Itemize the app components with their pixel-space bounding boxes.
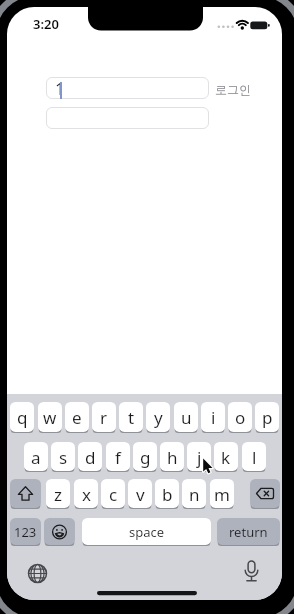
button[interactable]: q [10, 402, 34, 433]
staticText: n [189, 483, 200, 506]
staticText: l [252, 446, 257, 469]
staticText: q [17, 406, 28, 429]
button[interactable]: i [201, 402, 225, 433]
staticText: h [167, 446, 178, 469]
staticText: 3:20 [33, 15, 59, 33]
button[interactable]: space [82, 518, 211, 546]
button[interactable]: v [128, 479, 152, 509]
button[interactable]: 로그인 [215, 82, 251, 97]
staticText: o [235, 406, 246, 429]
staticText: w [43, 406, 57, 429]
button[interactable]: l [242, 442, 266, 472]
button[interactable]: f [106, 442, 130, 472]
button[interactable]: o [228, 402, 252, 433]
button[interactable]: m [210, 479, 234, 509]
staticText: 1 [55, 77, 65, 99]
staticText: return [229, 523, 268, 541]
button[interactable]: t [119, 402, 143, 433]
staticText: v [136, 483, 145, 506]
button[interactable] [23, 559, 52, 588]
button[interactable]: return [217, 518, 280, 546]
button[interactable]: e [65, 402, 89, 433]
staticText: e [72, 406, 82, 429]
button[interactable]: s [51, 442, 75, 472]
button[interactable] [237, 557, 266, 586]
staticText: z [54, 483, 62, 506]
staticText: a [31, 446, 41, 469]
staticText: p [262, 406, 273, 429]
staticText: r [100, 406, 108, 429]
staticText: s [59, 446, 68, 469]
button[interactable]: p [255, 402, 279, 433]
button[interactable]: z [46, 479, 70, 509]
staticText: 123 [14, 523, 37, 541]
button[interactable]: b [155, 479, 179, 509]
staticText: space [129, 523, 165, 541]
staticText: b [162, 483, 173, 506]
button[interactable]: y [146, 402, 170, 433]
button[interactable]: h [160, 442, 184, 472]
button[interactable]: a [24, 442, 48, 472]
staticText: f [115, 446, 121, 469]
staticText: c [109, 483, 118, 506]
staticText: j [197, 446, 202, 469]
button[interactable]: d [78, 442, 102, 472]
staticText: x [82, 483, 91, 506]
button[interactable]: r [92, 402, 116, 433]
staticText: g [140, 446, 151, 469]
button[interactable] [10, 479, 41, 509]
staticText: i [211, 406, 216, 429]
staticText: u [181, 406, 192, 429]
button[interactable]: x [74, 479, 98, 509]
button[interactable]: n [182, 479, 206, 509]
button[interactable]: c [101, 479, 125, 509]
button[interactable]: u [174, 402, 198, 433]
staticText: d [85, 446, 96, 469]
button[interactable] [250, 479, 280, 509]
staticText: k [221, 446, 231, 469]
button[interactable] [44, 518, 75, 546]
button[interactable]: g [133, 442, 157, 472]
button[interactable]: k [214, 442, 238, 472]
button[interactable]: j [187, 442, 211, 472]
staticText: y [154, 406, 163, 429]
button[interactable]: 123 [10, 518, 41, 546]
button[interactable] [46, 107, 209, 129]
staticText: t [128, 406, 135, 429]
button[interactable]: 1 [46, 77, 209, 99]
button[interactable]: w [38, 402, 62, 433]
staticText: m [214, 483, 230, 506]
